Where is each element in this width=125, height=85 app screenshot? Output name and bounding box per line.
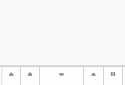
button[interactable]: Library	[104, 67, 122, 85]
button[interactable]: Notifications	[84, 67, 103, 85]
button[interactable]: Compose	[40, 67, 83, 85]
button[interactable]: Browse	[21, 67, 39, 85]
button[interactable]: Home	[2, 67, 20, 85]
